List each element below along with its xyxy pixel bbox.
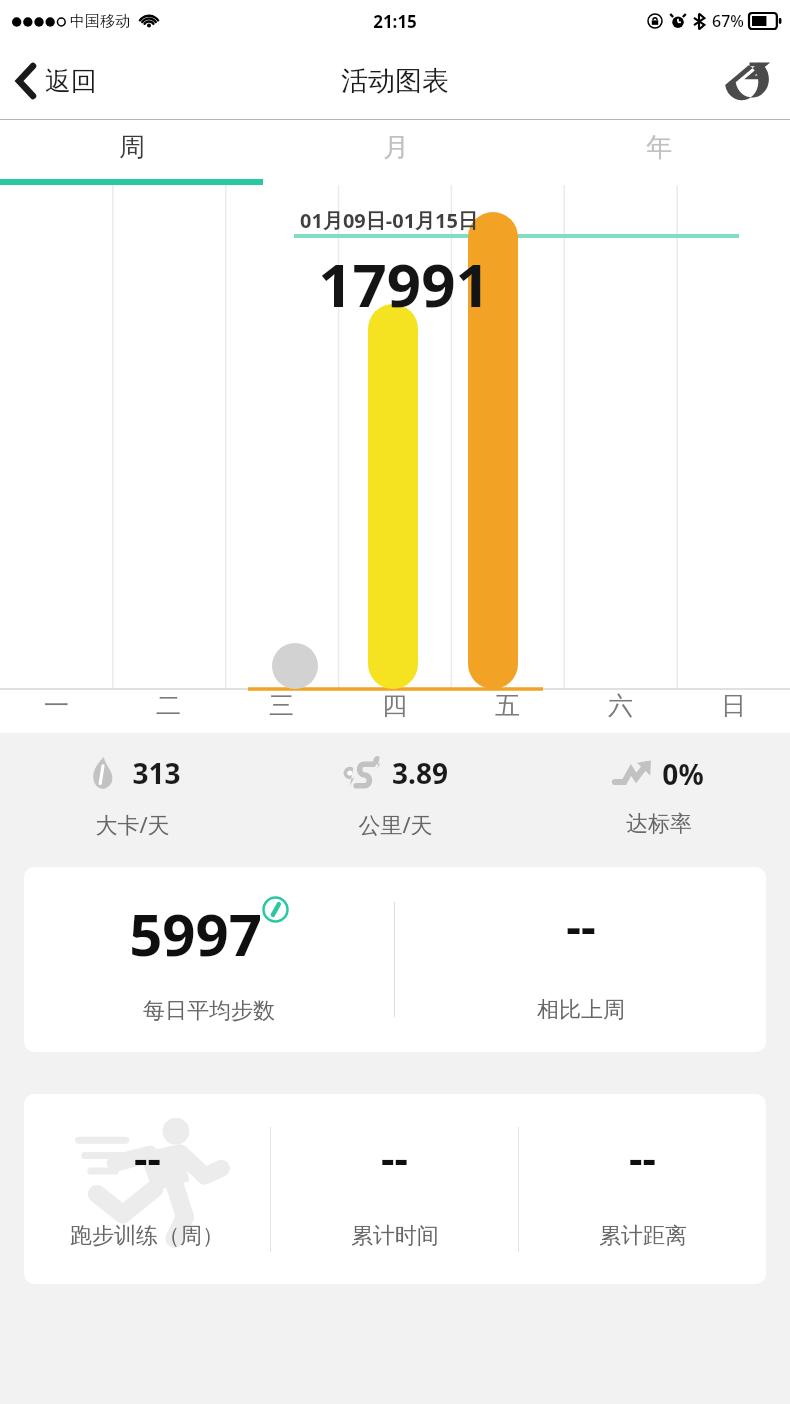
staticText: 达标率	[626, 810, 692, 838]
staticText: 六	[608, 690, 633, 721]
staticText: 周	[119, 131, 145, 164]
staticText: 相比上周	[537, 996, 625, 1024]
button[interactable]: 月	[264, 120, 527, 185]
button[interactable]: 5997	[24, 867, 766, 1052]
staticText: 活动图表	[341, 64, 449, 98]
staticText: 67%	[712, 10, 744, 32]
button[interactable]: 0%	[527, 733, 790, 859]
staticText: 每日平均步数	[143, 997, 275, 1025]
staticText: 17991	[318, 243, 490, 325]
button[interactable]: 年	[527, 120, 790, 185]
staticText: --	[629, 1129, 656, 1186]
staticText: 一	[44, 690, 69, 721]
button[interactable]: 周	[0, 120, 264, 185]
staticText: 日	[721, 690, 746, 721]
staticText: 3.89	[392, 754, 448, 792]
staticText: --	[134, 1129, 161, 1186]
staticText: 0%	[662, 755, 704, 793]
staticText: 四	[382, 690, 407, 721]
staticText: 313	[132, 754, 181, 792]
staticText: 21:15	[373, 10, 417, 33]
button[interactable]: --	[24, 1094, 766, 1284]
staticText: 5997	[129, 894, 262, 973]
button[interactable]: 3.89	[264, 733, 527, 859]
staticText: 五	[495, 690, 520, 721]
staticText: 中国移动	[70, 12, 130, 31]
staticText: 01月09日-01月15日	[300, 207, 478, 234]
staticText: --	[381, 1129, 408, 1186]
staticText: 跑步训练（周）	[70, 1222, 224, 1250]
button[interactable]: 返回	[0, 54, 115, 108]
staticText: 返回	[45, 65, 97, 98]
staticText: 大卡/天	[95, 809, 170, 839]
staticText: 月	[383, 131, 409, 164]
button[interactable]: 313	[0, 733, 264, 859]
staticText: 累计距离	[599, 1222, 687, 1250]
staticText: 二	[156, 690, 181, 721]
staticText: 公里/天	[358, 809, 433, 839]
button[interactable]: Sleep mode	[702, 46, 790, 116]
staticText: 累计时间	[351, 1222, 439, 1250]
staticText: --	[566, 895, 596, 958]
staticText: 年	[646, 131, 672, 164]
staticText: 三	[269, 690, 294, 721]
